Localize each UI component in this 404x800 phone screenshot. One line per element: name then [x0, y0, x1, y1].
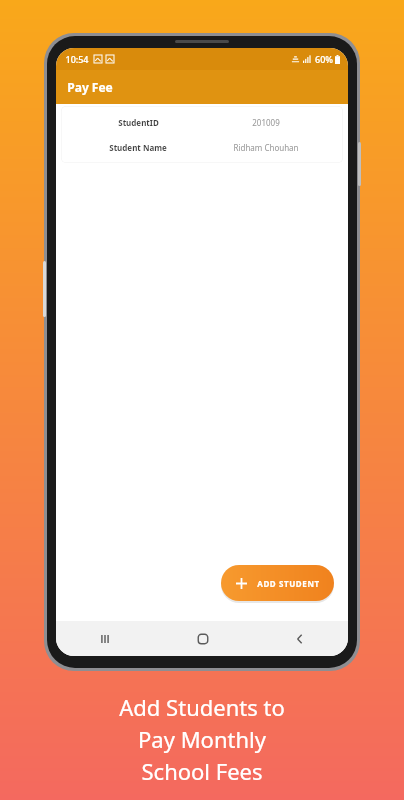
staticText: Pay Monthly: [138, 724, 266, 754]
button[interactable]: Recent apps: [56, 621, 154, 656]
staticText: 60%: [315, 53, 333, 65]
staticText: Student Name: [109, 142, 167, 153]
staticText: Pay Fee: [67, 79, 113, 95]
staticText: 10:54: [65, 53, 89, 65]
button[interactable]: ADD STUDENT: [221, 565, 334, 601]
button[interactable]: Home: [154, 621, 251, 656]
button[interactable]: StudentID: [61, 106, 343, 163]
staticText: 201009: [252, 117, 280, 128]
staticText: School Fees: [141, 756, 263, 786]
staticText: StudentID: [118, 117, 159, 128]
staticText: Add Students to: [119, 692, 285, 722]
button[interactable]: Back: [251, 621, 348, 656]
staticText: Ridham Chouhan: [233, 142, 299, 153]
staticText: ADD STUDENT: [257, 578, 320, 589]
